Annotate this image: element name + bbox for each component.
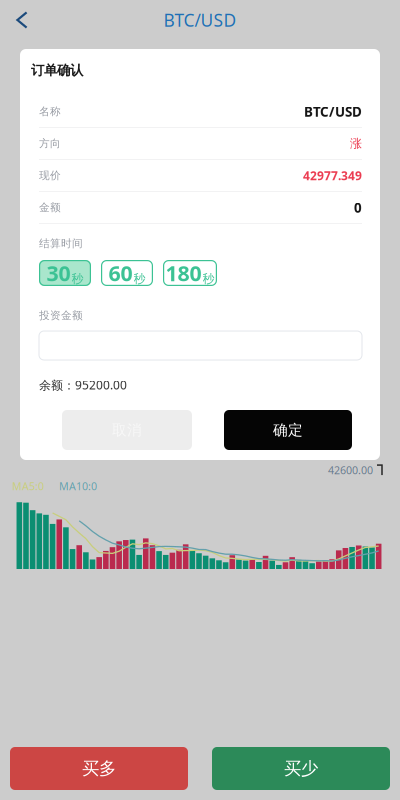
staticText: 金额: [39, 201, 61, 214]
button[interactable]: 买多: [10, 747, 188, 790]
staticText: 42600.00: [328, 463, 373, 477]
button[interactable]: 180: [163, 260, 217, 286]
staticText: MA10:0: [59, 479, 97, 493]
staticText: 订单确认: [31, 62, 83, 78]
staticText: 投资金额: [39, 309, 83, 322]
staticText: BTC/USD: [304, 103, 362, 120]
button[interactable]: 买少: [212, 747, 390, 790]
staticText: 180: [165, 259, 201, 287]
button[interactable]: 30: [39, 260, 91, 286]
staticText: 60: [108, 259, 132, 287]
staticText: 方向: [39, 137, 61, 150]
button[interactable]: 确定: [224, 410, 352, 450]
staticText: BTC/USD: [163, 8, 236, 31]
staticText: MA5:0: [12, 479, 44, 493]
staticText: 买多: [82, 758, 116, 779]
staticText: 42977.349: [303, 167, 362, 183]
button[interactable]: Back: [0, 0, 44, 40]
staticText: 名称: [39, 105, 61, 118]
staticText: 0: [354, 199, 362, 216]
staticText: 秒: [202, 271, 214, 286]
staticText: 涨: [350, 136, 362, 151]
staticText: 确定: [273, 421, 303, 439]
staticText: 秒: [71, 271, 83, 286]
staticText: 现价: [39, 169, 61, 182]
staticText: 30: [46, 259, 70, 287]
staticText: 买少: [284, 758, 318, 779]
staticText: 秒: [133, 271, 145, 286]
staticText: 余额：95200.00: [39, 377, 127, 393]
button[interactable]: 60: [101, 260, 153, 286]
staticText: 结算时间: [39, 237, 83, 250]
staticText: 取消: [112, 421, 142, 439]
